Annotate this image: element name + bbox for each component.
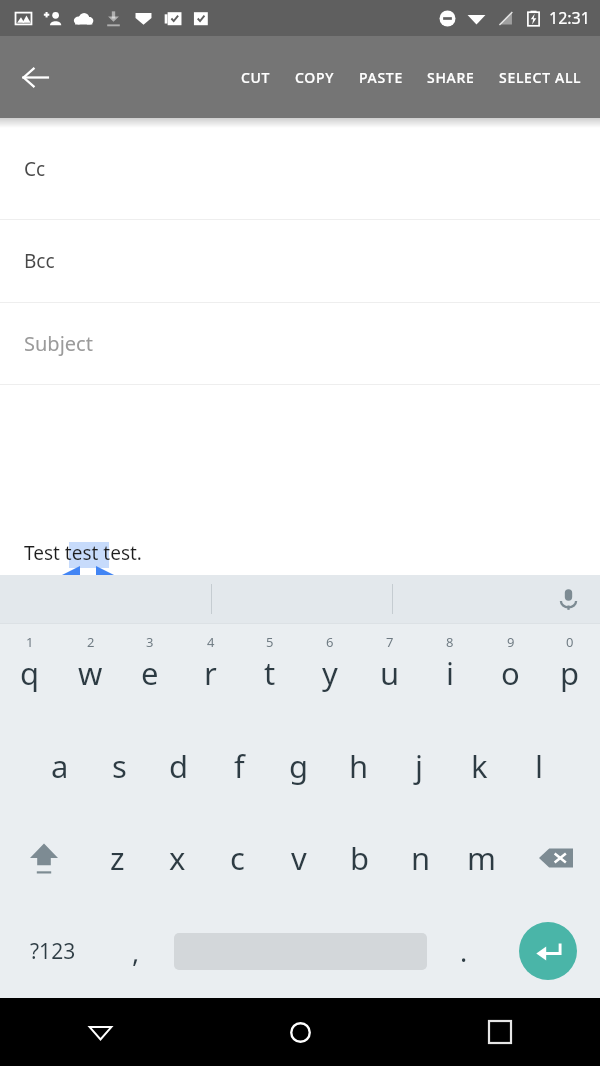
- button[interactable]: g: [269, 720, 329, 812]
- button[interactable]: Back: [0, 998, 200, 1066]
- button[interactable]: 3: [120, 624, 180, 720]
- button[interactable]: Home: [200, 998, 400, 1066]
- staticText: i: [446, 652, 454, 694]
- staticText: k: [471, 745, 488, 787]
- button[interactable]: 6: [300, 624, 360, 720]
- staticText: ?123: [30, 937, 76, 966]
- staticText: COPY: [295, 68, 335, 87]
- staticText: 4: [207, 633, 215, 651]
- button[interactable]: k: [449, 720, 509, 812]
- staticText: f: [234, 745, 245, 787]
- button[interactable]: 1: [0, 624, 60, 720]
- button[interactable]: CUT: [229, 52, 283, 103]
- staticText: u: [380, 652, 400, 694]
- staticText: g: [289, 745, 309, 787]
- button[interactable]: n: [390, 812, 451, 904]
- staticText: Subject: [24, 330, 93, 357]
- staticText: o: [501, 652, 520, 694]
- button[interactable]: c: [207, 812, 268, 904]
- staticText: 0: [566, 633, 574, 651]
- button[interactable]: Backspace: [512, 812, 600, 904]
- staticText: 6: [326, 633, 334, 651]
- button[interactable]: SHARE: [415, 52, 487, 103]
- staticText: q: [20, 652, 40, 694]
- staticText: w: [78, 652, 103, 694]
- staticText: j: [415, 745, 423, 787]
- button[interactable]: 5: [240, 624, 300, 720]
- staticText: x: [169, 837, 186, 879]
- staticText: p: [560, 652, 580, 694]
- staticText: 8: [446, 633, 454, 651]
- button[interactable]: d: [149, 720, 209, 812]
- staticText: CUT: [241, 68, 271, 87]
- button[interactable]: x: [147, 812, 207, 904]
- button[interactable]: ,: [105, 904, 167, 998]
- button[interactable]: h: [329, 720, 389, 812]
- staticText: 7: [386, 633, 394, 651]
- button[interactable]: 4: [180, 624, 240, 720]
- button[interactable]: s: [89, 720, 149, 812]
- button[interactable]: 2: [60, 624, 120, 720]
- button[interactable]: Recent apps: [400, 998, 600, 1066]
- button[interactable]: Enter: [495, 904, 600, 998]
- button[interactable]: Voice input: [550, 581, 586, 617]
- button[interactable]: b: [329, 812, 390, 904]
- staticText: Cc: [24, 156, 46, 182]
- button[interactable]: Back: [8, 50, 62, 104]
- button[interactable]: PASTE: [347, 52, 415, 103]
- staticText: b: [350, 837, 370, 879]
- button[interactable]: f: [209, 720, 269, 812]
- staticText: SELECT ALL: [499, 68, 582, 87]
- button[interactable]: .: [433, 904, 495, 998]
- button[interactable]: Cc: [0, 118, 600, 219]
- staticText: .: [460, 933, 468, 970]
- button[interactable]: 8: [420, 624, 480, 720]
- staticText: 12:31: [549, 7, 590, 29]
- button[interactable]: z: [87, 812, 147, 904]
- staticText: ,: [132, 933, 140, 970]
- staticText: d: [169, 745, 189, 787]
- button[interactable]: v: [268, 812, 329, 904]
- button[interactable]: COPY: [283, 52, 347, 103]
- staticText: z: [110, 837, 125, 879]
- staticText: 3: [146, 633, 154, 651]
- staticText: Bcc: [24, 248, 55, 274]
- staticText: PASTE: [359, 68, 403, 87]
- button[interactable]: 7: [360, 624, 420, 720]
- staticText: 1: [26, 633, 34, 651]
- button[interactable]: a: [30, 720, 89, 812]
- button[interactable]: Bcc: [0, 220, 600, 302]
- staticText: l: [535, 745, 543, 787]
- staticText: 2: [87, 633, 95, 651]
- staticText: r: [204, 652, 217, 694]
- staticText: c: [230, 837, 245, 879]
- button[interactable]: SELECT ALL: [487, 52, 594, 103]
- staticText: y: [322, 652, 338, 694]
- staticText: h: [349, 745, 369, 787]
- staticText: Test test test.: [24, 540, 142, 566]
- button[interactable]: Shift: [0, 812, 87, 904]
- staticText: n: [411, 837, 431, 879]
- staticText: a: [51, 745, 69, 787]
- button[interactable]: m: [451, 812, 512, 904]
- button[interactable]: ?123: [0, 904, 105, 998]
- staticText: SHARE: [427, 68, 475, 87]
- button[interactable]: l: [509, 720, 569, 812]
- staticText: v: [291, 837, 307, 879]
- button[interactable]: Subject: [0, 303, 600, 384]
- button[interactable]: 0: [540, 624, 600, 720]
- staticText: m: [467, 837, 496, 879]
- staticText: t: [264, 652, 276, 694]
- staticText: 9: [507, 633, 515, 651]
- button[interactable]: 9: [480, 624, 540, 720]
- button[interactable]: j: [389, 720, 449, 812]
- staticText: s: [112, 745, 127, 787]
- button[interactable]: [167, 904, 433, 998]
- staticText: e: [141, 652, 159, 694]
- staticText: 5: [266, 633, 274, 651]
